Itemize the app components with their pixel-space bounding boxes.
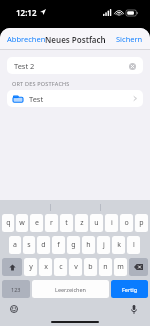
staticText: Test 2 <box>14 61 128 71</box>
staticText: Sichern <box>116 34 143 44</box>
button[interactable]: r <box>45 214 58 232</box>
button[interactable]: n <box>99 258 112 276</box>
staticText: Fertig <box>122 286 138 293</box>
staticText: g <box>71 240 76 250</box>
staticText: h <box>86 240 91 250</box>
staticText: v <box>74 262 78 272</box>
staticText: q <box>6 218 11 228</box>
staticText: s <box>27 240 31 250</box>
button[interactable]: v <box>69 258 82 276</box>
staticText: Test <box>29 94 133 104</box>
staticText: t <box>65 218 68 228</box>
button[interactable]: Test 2 <box>7 57 143 74</box>
staticText: 123 <box>11 286 21 293</box>
staticText: i <box>111 218 113 228</box>
button[interactable]: g <box>67 236 80 254</box>
button[interactable]: Clear text <box>128 62 136 70</box>
staticText: m <box>117 262 124 272</box>
button[interactable]: u <box>90 214 103 232</box>
button[interactable]: m <box>114 258 127 276</box>
staticText: x <box>44 262 48 272</box>
staticText: y <box>29 262 33 272</box>
staticText: z <box>80 218 84 228</box>
button[interactable]: w <box>16 214 28 232</box>
staticText: w <box>19 218 25 228</box>
button[interactable]: Abbrechen <box>0 30 53 48</box>
staticText: 12:12 <box>16 7 37 18</box>
button[interactable]: 123 <box>2 280 30 298</box>
button[interactable]: Dictation <box>128 303 140 315</box>
staticText: ORT DES POSTFACHS <box>12 80 70 87</box>
staticText: p <box>139 218 144 228</box>
button[interactable]: h <box>82 236 95 254</box>
staticText: o <box>124 218 129 228</box>
button[interactable]: o <box>120 214 133 232</box>
button[interactable]: Backspace <box>129 258 148 276</box>
button[interactable]: Sichern <box>109 30 150 48</box>
staticText: k <box>117 240 121 250</box>
button[interactable]: p <box>135 214 148 232</box>
button[interactable]: Shift <box>2 258 22 276</box>
button[interactable]: s <box>23 236 35 254</box>
button[interactable]: d <box>37 236 50 254</box>
button[interactable]: Test <box>7 90 143 107</box>
staticText: Abbrechen <box>7 34 46 44</box>
button[interactable]: x <box>39 258 52 276</box>
staticText: f <box>57 240 60 250</box>
button[interactable]: l <box>127 236 140 254</box>
button[interactable]: Leerzeichen <box>32 280 109 298</box>
staticText: u <box>94 218 99 228</box>
button[interactable]: b <box>84 258 97 276</box>
button[interactable]: t <box>60 214 73 232</box>
button[interactable]: k <box>112 236 125 254</box>
button[interactable]: f <box>52 236 65 254</box>
button[interactable]: Fertig <box>111 280 148 298</box>
button[interactable]: q <box>2 214 14 232</box>
button[interactable]: a <box>9 236 21 254</box>
staticText: r <box>50 218 53 228</box>
button[interactable]: z <box>75 214 88 232</box>
button[interactable]: Emoji <box>8 303 20 315</box>
staticText: a <box>13 240 17 250</box>
staticText: b <box>88 262 93 272</box>
staticText: Neues Postfach <box>45 34 106 45</box>
staticText: l <box>133 240 135 250</box>
button[interactable]: i <box>105 214 118 232</box>
staticText: n <box>103 262 108 272</box>
staticText: e <box>35 218 39 228</box>
staticText: d <box>41 240 46 250</box>
button[interactable]: j <box>97 236 110 254</box>
staticText: j <box>103 240 105 250</box>
button[interactable]: e <box>30 214 43 232</box>
staticText: c <box>59 262 63 272</box>
button[interactable]: y <box>24 258 37 276</box>
button[interactable]: c <box>54 258 67 276</box>
staticText: Leerzeichen <box>55 286 87 293</box>
